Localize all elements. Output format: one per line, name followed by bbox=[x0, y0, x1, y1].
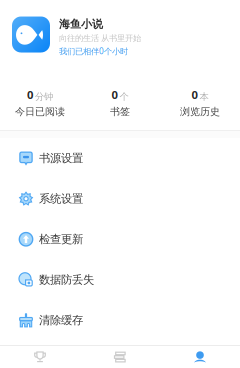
staticText: 浏览历史 bbox=[180, 105, 220, 118]
staticText: 海鱼小说 bbox=[59, 17, 103, 31]
button[interactable]: 书架 bbox=[0, 346, 80, 368]
button[interactable]: 系统设置 bbox=[0, 178, 240, 219]
staticText: 个 bbox=[119, 91, 128, 102]
button[interactable]: 书源设置 bbox=[0, 138, 240, 178]
button[interactable]: 数据防丢失 bbox=[0, 259, 240, 300]
button[interactable]: 我的 bbox=[160, 346, 240, 368]
staticText: 向往的生活 从书里开始 bbox=[59, 33, 141, 43]
button[interactable]: 检查更新 bbox=[0, 219, 240, 259]
staticText: 分钟 bbox=[35, 91, 53, 102]
staticText: 0 bbox=[111, 87, 117, 102]
staticText: 数据防丢失 bbox=[39, 273, 94, 287]
staticText: 系统设置 bbox=[39, 192, 83, 206]
staticText: 检查更新 bbox=[39, 232, 83, 246]
staticText: 清除缓存 bbox=[39, 313, 83, 327]
staticText: 书源设置 bbox=[39, 151, 83, 165]
staticText: 书签 bbox=[110, 105, 130, 118]
staticText: 0 bbox=[191, 87, 197, 102]
staticText: 本 bbox=[199, 91, 208, 102]
button[interactable]: 分类 bbox=[80, 346, 160, 368]
staticText: 今日已阅读 bbox=[15, 105, 65, 118]
staticText: 我们已相伴0个小时 bbox=[59, 45, 128, 57]
button[interactable]: 清除缓存 bbox=[0, 300, 240, 340]
staticText: 0 bbox=[27, 87, 33, 102]
